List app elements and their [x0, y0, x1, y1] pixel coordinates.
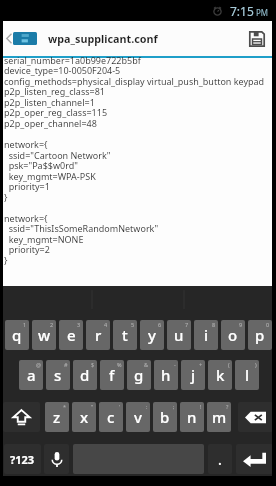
- button[interactable]: .: [208, 444, 232, 474]
- staticText: t: [122, 325, 128, 345]
- staticText: ;: [173, 403, 175, 410]
- staticText: .: [218, 450, 222, 469]
- staticText: l: [245, 365, 250, 385]
- button[interactable]: Enter: [236, 444, 273, 474]
- button[interactable]: m: [207, 402, 231, 432]
- staticText: key_mgmt=NONE: [4, 233, 84, 245]
- staticText: 0: [266, 321, 270, 328]
- staticText: a: [27, 365, 36, 385]
- button[interactable]: e: [59, 320, 83, 350]
- staticText: +: [199, 361, 203, 368]
- staticText: :: [146, 403, 148, 410]
- staticText: ?123: [10, 452, 35, 467]
- button[interactable]: t: [113, 320, 137, 350]
- button[interactable]: i: [194, 320, 218, 350]
- button[interactable]: g: [127, 360, 151, 390]
- staticText: i: [204, 325, 209, 345]
- button[interactable]: a: [19, 360, 43, 390]
- staticText: key_mgmt=WPA-PSK: [4, 170, 96, 182]
- staticText: 8: [212, 321, 216, 328]
- staticText: config_methods=physical_display virtual_…: [4, 75, 265, 87]
- button[interactable]: Backspace: [238, 402, 273, 432]
- staticText: p2p_listen_reg_class=81: [4, 85, 105, 97]
- button[interactable]: v: [126, 402, 150, 432]
- button[interactable]: f: [100, 360, 124, 390]
- staticText: ?: [226, 403, 229, 410]
- button[interactable]: u: [167, 320, 191, 350]
- staticText: n: [187, 407, 197, 427]
- staticText: network={: [4, 212, 48, 224]
- button[interactable]: ?123: [4, 444, 41, 474]
- button[interactable]: y: [140, 320, 164, 350]
- staticText: psk="Pa$$w0rd": [4, 159, 78, 171]
- staticText: d: [80, 365, 90, 385]
- button[interactable]: z: [45, 402, 69, 432]
- staticText: device_type=10-0050F204-5: [4, 64, 121, 76]
- staticText: serial_number=1a0b99e722b5bf: [4, 54, 141, 66]
- staticText: 1: [23, 321, 27, 328]
- button[interactable]: x: [72, 402, 96, 432]
- staticText: -: [174, 361, 176, 368]
- staticText: m: [212, 407, 227, 427]
- staticText: p2p_oper_reg_class=115: [4, 106, 108, 118]
- button[interactable]: k: [208, 360, 232, 390]
- staticText: network={: [4, 138, 48, 150]
- button[interactable]: c: [99, 402, 123, 432]
- button[interactable]: o: [221, 320, 245, 350]
- staticText: u: [174, 325, 184, 345]
- staticText: PM: [256, 7, 269, 18]
- staticText: ): [255, 361, 257, 368]
- staticText: #: [64, 361, 68, 368]
- staticText: g: [134, 365, 144, 385]
- staticText: priority=2: [4, 243, 50, 255]
- button[interactable]: Voice input: [44, 444, 69, 474]
- staticText: j: [191, 365, 196, 385]
- staticText: x: [80, 407, 89, 427]
- button[interactable]: w: [32, 320, 56, 350]
- button[interactable]: r: [86, 320, 110, 350]
- staticText: ': [119, 403, 121, 410]
- staticText: 2: [50, 321, 54, 328]
- staticText: p: [255, 325, 265, 345]
- staticText: y: [148, 325, 156, 345]
- staticText: &: [144, 361, 149, 368]
- staticText: c: [107, 407, 115, 427]
- staticText: *: [63, 403, 67, 410]
- button[interactable]: b: [153, 402, 177, 432]
- staticText: z: [53, 407, 61, 427]
- staticText: }: [4, 191, 8, 203]
- button[interactable]: h: [154, 360, 178, 390]
- staticText: 7:15: [230, 3, 254, 19]
- button[interactable]: Navigate up: [2, 21, 39, 56]
- button[interactable]: d: [73, 360, 97, 390]
- staticText: !: [200, 403, 202, 410]
- staticText: w: [38, 325, 51, 345]
- staticText: v: [134, 407, 142, 427]
- button[interactable]: j: [181, 360, 205, 390]
- staticText: $: [91, 361, 95, 368]
- button[interactable]: Shift: [3, 402, 40, 432]
- staticText: p2p_listen_channel=1: [4, 96, 95, 108]
- staticText: @: [36, 361, 41, 368]
- staticText: r: [95, 325, 102, 345]
- button[interactable]: Save: [242, 21, 272, 56]
- button[interactable]: p: [248, 320, 272, 350]
- staticText: 6: [158, 321, 162, 328]
- button[interactable]: n: [180, 402, 204, 432]
- staticText: ssid="ThisIsSomeRandomNetwork": [4, 222, 159, 234]
- staticText: %: [117, 361, 122, 368]
- button[interactable]: s: [46, 360, 70, 390]
- staticText: 4: [104, 321, 108, 328]
- staticText: f: [109, 365, 115, 385]
- staticText: 5: [131, 321, 135, 328]
- button[interactable]: q: [5, 320, 29, 350]
- button[interactable]: l: [235, 360, 259, 390]
- staticText: b: [160, 407, 170, 427]
- staticText: }: [4, 254, 8, 266]
- staticText: p2p_oper_channel=48: [4, 117, 97, 129]
- staticText: 7: [185, 321, 189, 328]
- staticText: s: [54, 365, 62, 385]
- staticText: e: [67, 325, 76, 345]
- staticText: 3: [77, 321, 81, 328]
